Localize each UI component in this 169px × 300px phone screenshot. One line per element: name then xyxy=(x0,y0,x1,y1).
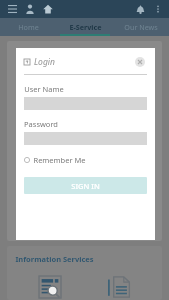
staticText: Password xyxy=(24,119,58,129)
button[interactable]: More options xyxy=(151,2,165,16)
button[interactable]: Forms xyxy=(104,273,134,300)
button[interactable]: E-Service xyxy=(57,18,113,36)
button[interactable]: Account xyxy=(22,1,38,17)
staticText: Home xyxy=(18,22,39,32)
staticText: Information Services xyxy=(15,254,94,264)
button[interactable]: Search documents xyxy=(35,273,65,300)
button[interactable]: Notifications xyxy=(132,1,148,17)
staticText: SIGN IN xyxy=(71,181,100,191)
button[interactable]: Close xyxy=(133,55,147,69)
staticText: Remember Me xyxy=(33,155,86,165)
button[interactable]: Our News xyxy=(113,18,169,36)
button[interactable]: Home xyxy=(40,1,56,17)
staticText: Our News xyxy=(124,22,158,32)
button[interactable]: Menu xyxy=(4,1,20,17)
button[interactable]: Home xyxy=(0,18,57,36)
button[interactable]: SIGN IN xyxy=(24,177,147,194)
staticText: E-Service xyxy=(69,22,102,32)
staticText: User Name xyxy=(24,84,64,94)
staticText: Login xyxy=(34,56,55,68)
button[interactable]: Remember Me xyxy=(24,155,86,165)
